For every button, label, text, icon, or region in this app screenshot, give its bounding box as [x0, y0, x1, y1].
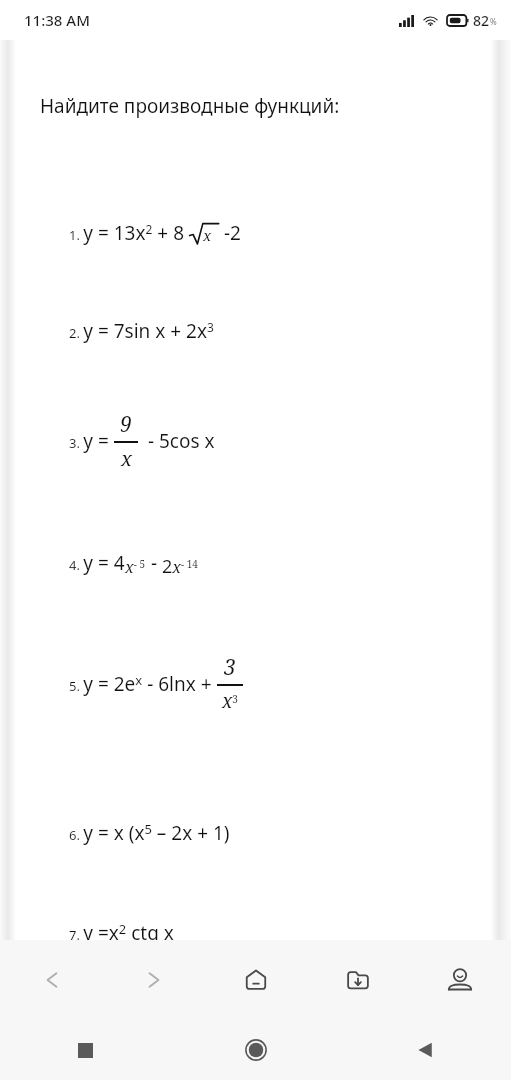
staticText: 82	[473, 11, 490, 30]
staticText: Найдите производные функций:	[40, 93, 340, 119]
staticText: 11:38 AM	[24, 10, 90, 30]
staticText: 2x- 14	[162, 554, 198, 579]
button[interactable]: Home	[171, 1020, 341, 1080]
staticText: x	[121, 445, 132, 472]
staticText: x- 5	[125, 556, 146, 578]
button[interactable]: Forward	[103, 940, 205, 1020]
staticText: -	[146, 550, 162, 576]
button[interactable]: Back	[341, 1020, 511, 1080]
button[interactable]: Recents	[0, 1020, 171, 1080]
staticText: - 5cos x	[138, 428, 215, 454]
staticText: 3. y =	[69, 428, 114, 454]
button[interactable]: Back	[0, 940, 103, 1020]
button[interactable]: Account	[409, 940, 511, 1020]
button[interactable]: Downloads	[307, 940, 409, 1020]
button[interactable]: Home	[205, 940, 307, 1020]
staticText: x	[203, 225, 212, 245]
staticText: 7. y =x2 ctg x	[69, 920, 174, 946]
staticText: %	[490, 16, 497, 27]
staticText: 3	[224, 653, 236, 682]
staticText: 5. y = 2ex - 6lnx +	[69, 671, 217, 697]
staticText: 9	[120, 410, 132, 439]
staticText: x3	[222, 688, 238, 714]
staticText: 6. y = x (x5 – 2x + 1)	[69, 820, 230, 846]
staticText: 4. y = 4	[69, 550, 125, 576]
staticText: 2. y = 7sin x + 2x3	[69, 318, 214, 344]
staticText: 1. y = 13x2 + 8	[69, 220, 189, 246]
staticText: -2	[219, 220, 241, 246]
